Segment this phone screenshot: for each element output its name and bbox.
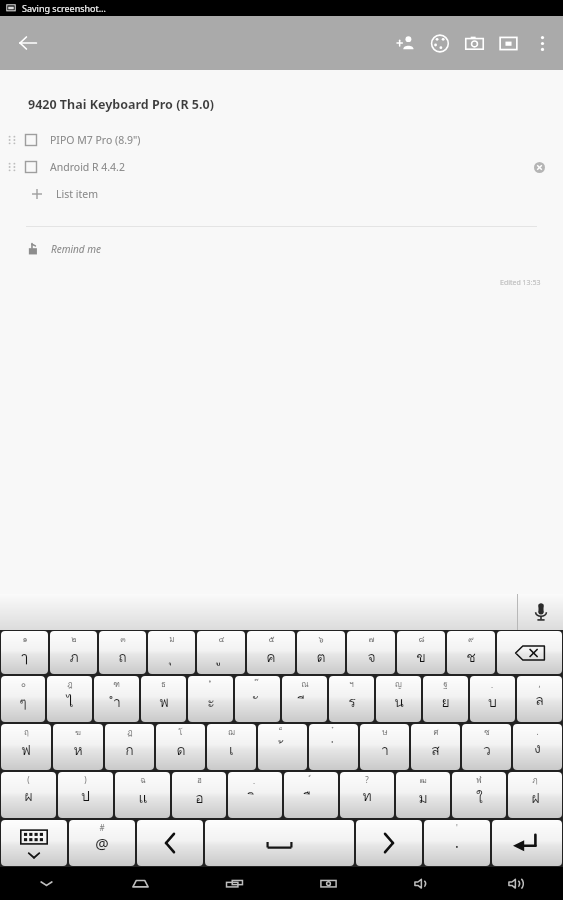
button[interactable]: Backspace <box>497 631 562 674</box>
staticText: , <box>538 678 541 689</box>
staticText: ๙ <box>468 633 474 646</box>
staticText: ๐ <box>21 678 26 691</box>
button[interactable]: ฉ <box>115 772 170 818</box>
button[interactable]: Add collaborator <box>389 26 423 60</box>
button[interactable]: Delete item <box>529 157 549 177</box>
staticText: ' <box>456 822 458 833</box>
button[interactable]: ' <box>424 820 490 866</box>
staticText: ค <box>266 646 276 668</box>
button[interactable]: ณ <box>282 676 327 722</box>
staticText: ๔ <box>218 633 225 646</box>
button[interactable]: ๓ <box>99 631 146 674</box>
button[interactable]: ฮ <box>172 772 226 818</box>
button[interactable]: ซ <box>462 724 511 770</box>
staticText: ไ <box>66 691 74 713</box>
button[interactable]: ๙ <box>447 631 495 674</box>
button[interactable]: ๋ <box>309 724 358 770</box>
staticText: ต <box>316 646 326 668</box>
staticText: า <box>381 739 389 761</box>
button[interactable]: ๑ <box>1 631 48 674</box>
button[interactable]: ฯ <box>329 676 374 722</box>
button[interactable]: Key <box>205 820 354 866</box>
staticText: ข <box>416 646 426 668</box>
button[interactable]: ฎ <box>47 676 92 722</box>
button[interactable]: # <box>69 820 135 866</box>
button[interactable]: Recent apps <box>187 867 281 900</box>
button[interactable]: ๕ <box>247 631 295 674</box>
staticText: บ <box>488 691 497 713</box>
staticText: ๖ <box>318 633 324 646</box>
staticText: ( <box>27 774 30 785</box>
staticText: ห <box>73 739 83 761</box>
button[interactable]: Android R 4.4.2 <box>0 153 563 180</box>
button[interactable]: Change colour <box>423 26 457 60</box>
button[interactable]: ( <box>1 772 56 818</box>
staticText: List item <box>56 187 98 201</box>
button[interactable]: ๐ <box>1 676 45 722</box>
button[interactable] <box>0 594 517 630</box>
button[interactable]: Key <box>1 820 67 866</box>
button[interactable]: Volume up <box>469 867 563 900</box>
staticText: 9420 Thai Keyboard Pro (R 5.0) <box>28 96 214 113</box>
button[interactable]: ฌ <box>207 724 256 770</box>
button[interactable]: Voice input <box>518 594 563 630</box>
staticText: เ <box>229 739 234 761</box>
button[interactable]: ๖ <box>297 631 345 674</box>
button[interactable]: ษ <box>360 724 409 770</box>
button[interactable]: ? <box>340 772 394 818</box>
button[interactable]: PIPO M7 Pro (8.9") <box>0 126 563 153</box>
button[interactable]: . <box>513 724 562 770</box>
button[interactable]: Add image <box>457 26 491 60</box>
button[interactable]: More options <box>525 26 559 60</box>
button[interactable]: ฬ <box>452 772 506 818</box>
button[interactable]: Key <box>492 820 562 866</box>
button[interactable]: ํ <box>188 676 233 722</box>
button[interactable]: ๔ <box>197 631 245 674</box>
button[interactable]: ๒ <box>50 631 97 674</box>
button[interactable]: ธ <box>141 676 186 722</box>
button[interactable]: ฒ <box>396 772 450 818</box>
button[interactable]: ๊ <box>235 676 280 722</box>
button[interactable]: ฆ <box>53 724 103 770</box>
button[interactable]: ๗ <box>347 631 395 674</box>
button[interactable]: Volume down <box>375 867 469 900</box>
button[interactable]: ๘ <box>397 631 445 674</box>
button[interactable]: ฦ <box>508 772 562 818</box>
staticText: ผ <box>24 785 33 807</box>
staticText: ๕ <box>268 633 275 646</box>
button[interactable]: โ <box>156 724 205 770</box>
staticText: @ <box>95 833 109 853</box>
button[interactable]: ฑ <box>94 676 139 722</box>
button[interactable]: ฺ <box>228 772 282 818</box>
button[interactable]: Key <box>137 820 203 866</box>
button[interactable]: Key <box>356 820 422 866</box>
staticText: แ <box>138 787 148 809</box>
staticText: Saving screenshot… <box>22 2 106 14</box>
button[interactable]: ) <box>58 772 113 818</box>
staticText: ม <box>169 633 175 646</box>
button[interactable]: Archive <box>491 26 525 60</box>
button[interactable]: Home <box>93 867 187 900</box>
staticText: ธ <box>161 678 166 691</box>
button[interactable]: ญ <box>376 676 421 722</box>
button[interactable]: ศ <box>411 724 460 770</box>
button[interactable]: 9420 Thai Keyboard Pro (R 5.0) <box>0 96 563 113</box>
button[interactable]: ์ <box>284 772 338 818</box>
button[interactable]: ฐ <box>423 676 468 722</box>
button[interactable]: ฏ <box>105 724 154 770</box>
staticText: ๗ <box>368 633 375 646</box>
button[interactable]: ฤ <box>1 724 51 770</box>
button[interactable]: ็ <box>258 724 307 770</box>
button[interactable]: Remind me <box>0 242 563 256</box>
button[interactable]: Screenshot <box>281 867 375 900</box>
button[interactable]: Back <box>8 23 48 63</box>
staticText: ำ <box>113 691 121 713</box>
button[interactable]: ม <box>148 631 195 674</box>
staticText: ช <box>466 646 476 668</box>
staticText: ล <box>535 689 544 711</box>
button[interactable]: List item <box>0 180 563 207</box>
button[interactable]: ฺ <box>470 676 515 722</box>
staticText: ว <box>483 739 491 761</box>
button[interactable]: , <box>517 676 562 722</box>
button[interactable]: Hide keyboard <box>0 867 93 900</box>
